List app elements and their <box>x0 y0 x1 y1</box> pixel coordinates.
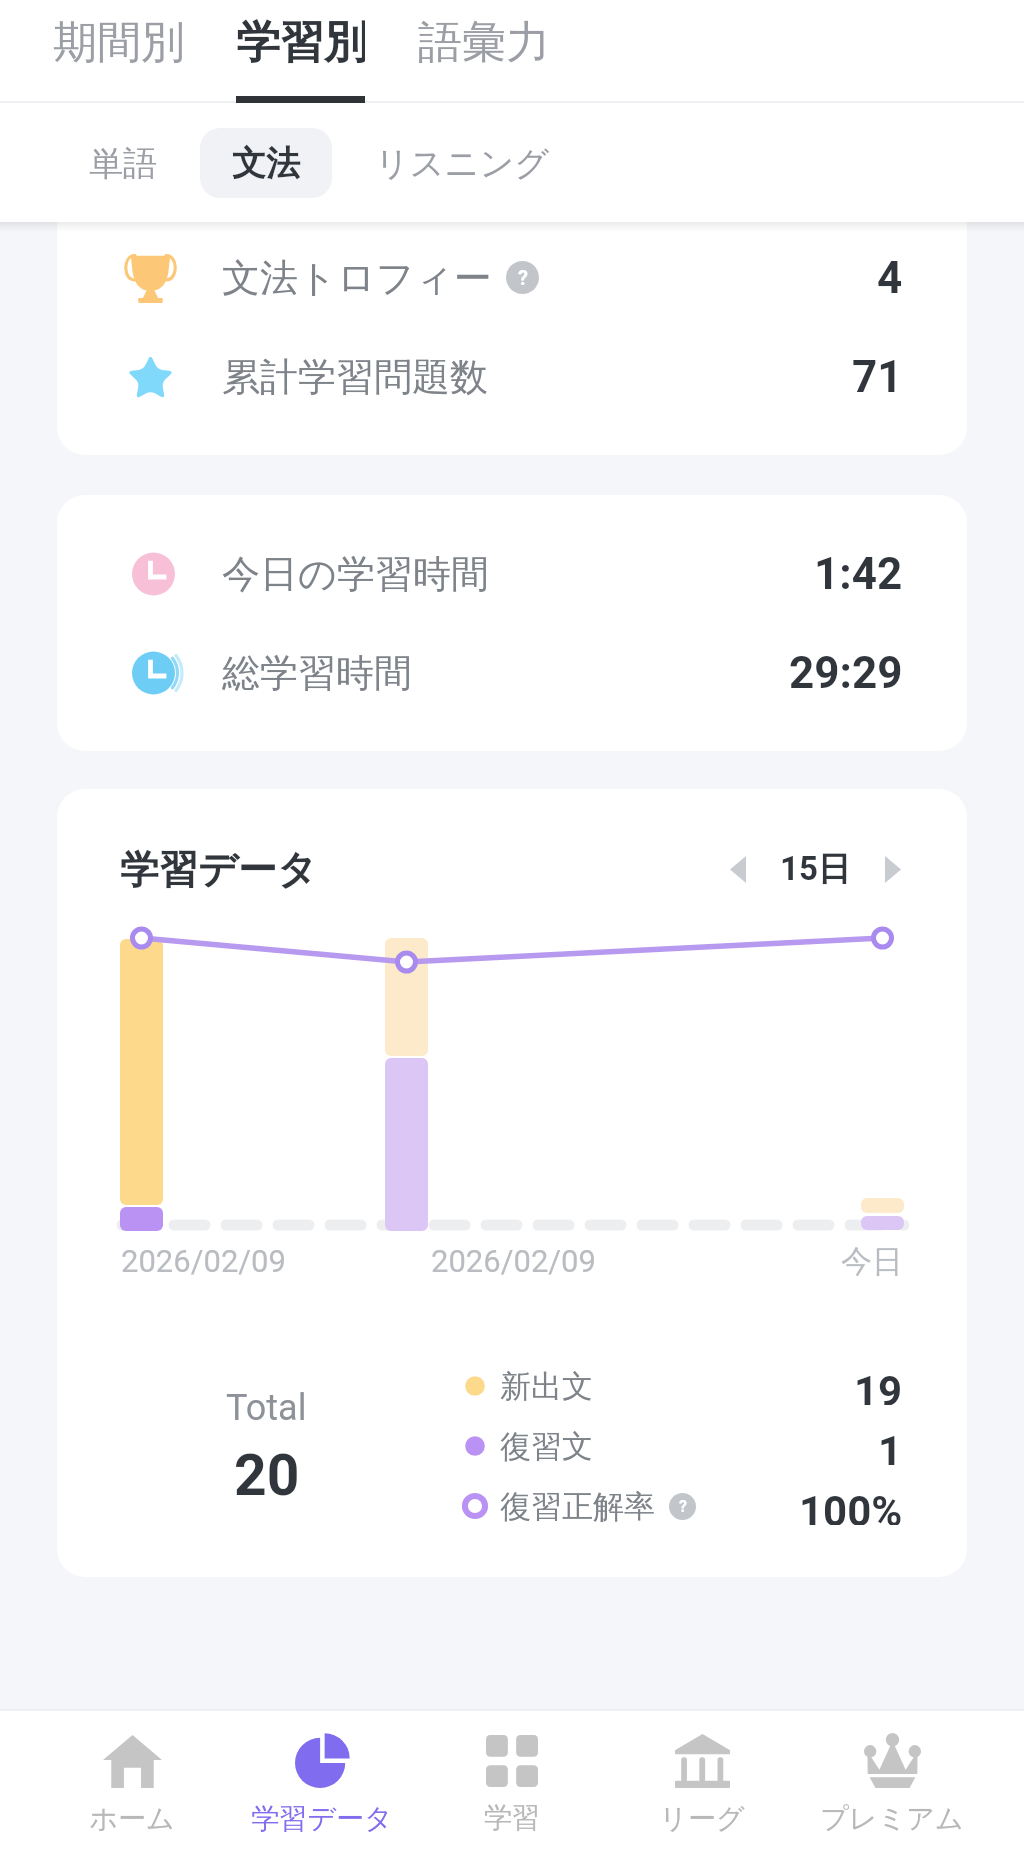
staticText: 学習データ <box>251 1801 393 1836</box>
staticText: ? <box>518 266 528 289</box>
button[interactable]: 復習文 <box>463 1427 903 1465</box>
staticText: 今日 <box>841 1242 903 1281</box>
staticText: 学習 <box>484 1800 540 1835</box>
staticText: リーグ <box>659 1801 745 1836</box>
staticText: 15日 <box>780 848 851 890</box>
button[interactable]: 累計学習問題数 <box>57 327 967 426</box>
staticText: 総学習時間 <box>222 649 412 697</box>
staticText: 2026/02/09 <box>121 1243 286 1279</box>
button[interactable]: 次の期間 <box>873 849 913 889</box>
staticText: 今日の学習時間 <box>222 550 489 598</box>
button[interactable]: 新出文 <box>463 1367 903 1405</box>
staticText: 復習正解率 <box>500 1487 655 1525</box>
staticText: 29:29 <box>789 647 903 699</box>
button[interactable]: 期間別 <box>53 0 184 103</box>
button[interactable]: リスニング <box>343 128 581 198</box>
staticText: 文法 <box>232 142 300 185</box>
button[interactable]: プレミアム <box>797 1711 987 1859</box>
button[interactable]: 語彙力 <box>418 0 549 103</box>
staticText: ホーム <box>89 1801 175 1836</box>
staticText: 文法トロフィー <box>222 254 492 302</box>
staticText: 71 <box>852 351 903 403</box>
staticText: Total <box>226 1387 307 1429</box>
staticText: 100% <box>799 1487 903 1525</box>
staticText: 2026/02/09 <box>431 1243 596 1279</box>
staticText: 1 <box>878 1427 903 1465</box>
button[interactable]: 文法 <box>200 128 332 198</box>
staticText: 1:42 <box>814 548 903 600</box>
staticText: 学習データ <box>120 845 317 894</box>
staticText: 復習文 <box>500 1427 593 1465</box>
staticText: 4 <box>877 252 903 304</box>
staticText: 累計学習問題数 <box>222 353 488 401</box>
button[interactable]: 総学習時間 <box>57 623 967 722</box>
button[interactable]: 文法トロフィー <box>57 228 967 327</box>
staticText: 期間別 <box>53 15 184 70</box>
staticText: プレミアム <box>820 1801 964 1836</box>
staticText: 20 <box>234 1442 300 1509</box>
staticText: 学習別 <box>236 15 365 70</box>
button[interactable]: 前の期間 <box>718 849 758 889</box>
button[interactable]: 単語 <box>57 128 189 198</box>
staticText: 語彙力 <box>418 15 549 70</box>
button[interactable]: 学習別 <box>236 0 365 103</box>
staticText: リスニング <box>375 142 549 185</box>
staticText: 19 <box>854 1367 903 1405</box>
button[interactable]: ホーム <box>37 1711 227 1859</box>
button[interactable]: 学習データ <box>227 1711 417 1859</box>
button[interactable]: 学習 <box>417 1711 607 1859</box>
button[interactable]: 復習正解率 <box>463 1487 903 1525</box>
staticText: ? <box>679 1497 687 1516</box>
button[interactable]: 今日の学習時間 <box>57 524 967 623</box>
staticText: 新出文 <box>500 1367 593 1405</box>
staticText: 単語 <box>89 142 157 185</box>
button[interactable]: リーグ <box>607 1711 797 1859</box>
